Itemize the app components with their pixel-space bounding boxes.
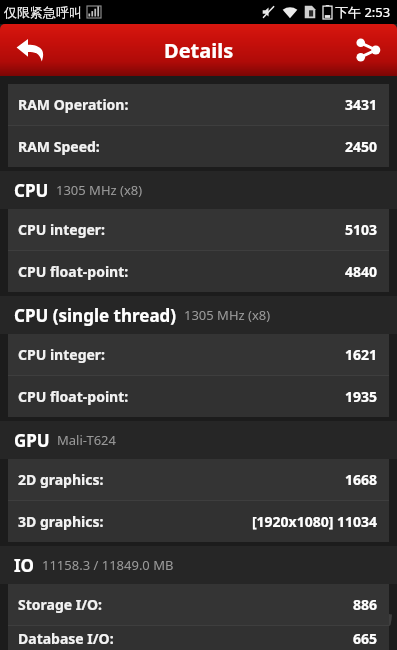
staticText: 665 [352,629,377,648]
staticText: IO [14,554,35,577]
staticText: 下午 2:53 [335,3,391,21]
staticText: Storage I/O: [18,595,103,614]
staticText: 下载吧 [289,589,391,632]
button[interactable]: CPU float-point: [8,251,389,292]
button[interactable]: Storage I/O: [8,584,389,625]
button[interactable]: Database I/O: [8,626,389,650]
staticText: www.xiazaiba.com [297,632,384,646]
staticText: RAM Operation: [18,95,129,114]
button[interactable]: CPU float-point: [8,376,389,417]
staticText: CPU float-point: [18,262,129,281]
staticText: 仅限紧急呼叫 [4,4,82,20]
staticText: 3D graphics: [18,512,104,531]
staticText: 886 [352,595,377,614]
staticText: 1621 [344,345,377,364]
staticText: 1935 [344,387,377,406]
staticText: CPU integer: [18,345,106,364]
staticText: [1920x1080] 11034 [251,512,377,531]
staticText: 3431 [344,95,377,114]
staticText: 2D graphics: [18,470,104,489]
staticText: GPU [14,429,50,452]
button[interactable]: 3D graphics: [8,501,389,542]
staticText: CPU float-point: [18,387,129,406]
staticText: RAM Speed: [18,137,100,156]
staticText: CPU integer: [18,220,106,239]
button[interactable]: Share [339,24,397,76]
staticText: Database I/O: [18,629,114,648]
staticText: 1305 MHz (x8) [184,306,271,324]
staticText: 1305 MHz (x8) [56,181,143,199]
button[interactable]: RAM Operation: [8,84,389,125]
button[interactable]: CPU integer: [8,334,389,375]
button[interactable]: 2D graphics: [8,459,389,500]
staticText: Details [164,37,234,64]
staticText: 1668 [344,470,377,489]
button[interactable]: RAM Speed: [8,126,389,167]
button[interactable]: CPU integer: [8,209,389,250]
staticText: Mali-T624 [57,431,116,449]
button[interactable]: Back [0,24,62,76]
staticText: 5103 [344,220,377,239]
staticText: 2450 [344,137,377,156]
staticText: 11158.3 / 11849.0 MB [42,556,174,574]
staticText: CPU [14,179,49,202]
staticText: CPU (single thread) [14,304,177,327]
staticText: 4840 [344,262,377,281]
